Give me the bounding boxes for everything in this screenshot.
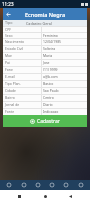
staticText: Pai [5,60,41,65]
button[interactable]: Sexo [3,32,87,38]
button[interactable]: Fonte [3,108,87,115]
button[interactable]: Jornal de [3,101,87,108]
staticText: Solteira [43,46,56,51]
button[interactable]: Cidade [3,87,87,94]
button[interactable]: Nascimento [3,38,87,45]
button[interactable]: Info [61,180,71,190]
staticText: Maria [43,53,53,58]
staticText: Fonte [5,109,41,114]
button[interactable]: Estado Civil [3,45,87,52]
staticText: Estado Civil [5,46,41,51]
button[interactable]: Recent apps [14,191,25,202]
staticText: Sao Paulo [43,88,59,93]
staticText: Tipo Cadastro [5,20,26,26]
button[interactable]: Bairro [3,94,87,101]
staticText: Basico [43,81,54,86]
staticText: CPF [5,27,41,32]
staticText: Sexo [5,33,41,38]
staticText: Indicacao [43,109,59,114]
button[interactable]: Pai [3,59,87,66]
staticText: 12/04/1985 [43,39,62,44]
button[interactable]: CPF [3,26,87,32]
staticText: Nascimento [5,39,41,44]
staticText: Cadastrar [37,118,60,125]
staticText: Cadastro Geral [26,21,52,26]
staticText: Tipo Plan. [5,81,41,86]
button[interactable]: Cadastrar [3,115,87,127]
button[interactable]: Delete [76,180,86,190]
button[interactable]: Home [40,191,51,202]
staticText: a@b.com [43,74,58,79]
staticText: 11:23 [2,1,14,7]
button[interactable]: Tipo Plan. [3,80,87,87]
staticText: Feminino [43,33,58,38]
staticText: Centro [43,95,54,100]
staticText: E-mail [5,74,41,79]
button[interactable]: Share [4,180,14,190]
button[interactable]: Edit [19,180,29,190]
button[interactable]: Mae [3,52,87,59]
button[interactable]: Back [3,9,14,20]
staticText: Mae [5,53,41,58]
staticText: Cidade [5,88,41,93]
staticText: Ecnomia Negra [25,11,66,18]
staticText: Bairro [5,95,41,100]
staticText: Jose [43,60,50,65]
staticText: (11) 9999 [43,67,58,72]
button[interactable]: E-mail [3,73,87,80]
button[interactable]: Back [65,191,76,202]
button[interactable]: Tipo Cadastro [3,20,87,26]
staticText: Jornal de [5,102,41,107]
staticText: Diario [43,102,53,107]
button[interactable]: Fone [3,66,87,73]
button[interactable]: Rotate [47,180,57,190]
button[interactable]: Crop [33,180,43,190]
staticText: Fone [5,67,41,72]
